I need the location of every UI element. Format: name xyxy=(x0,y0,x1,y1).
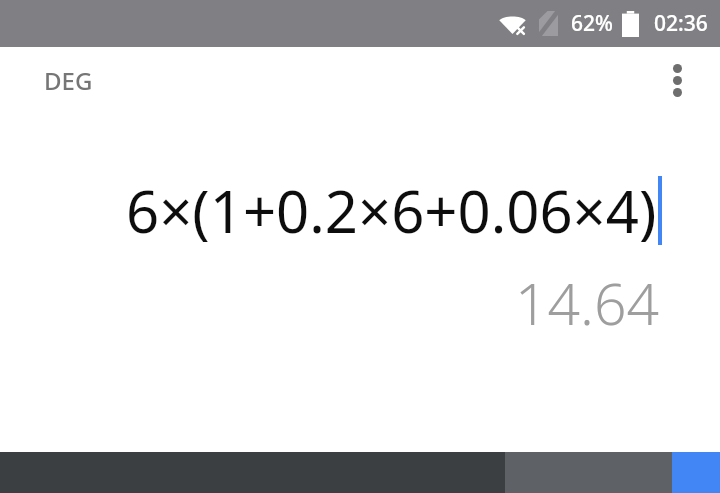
button[interactable]: 14.64 xyxy=(0,264,720,342)
staticText: 62% xyxy=(571,9,613,38)
staticText: 02:36 xyxy=(654,9,708,38)
staticText: 14.64 xyxy=(515,264,660,342)
button[interactable]: More options xyxy=(648,51,706,109)
button[interactable]: DEG xyxy=(30,56,107,105)
staticText: DEG xyxy=(44,64,93,97)
button[interactable]: 6×(1+0.2×6+0.06×4) xyxy=(0,171,720,250)
staticText: 6×(1+0.2×6+0.06×4) xyxy=(126,171,657,250)
